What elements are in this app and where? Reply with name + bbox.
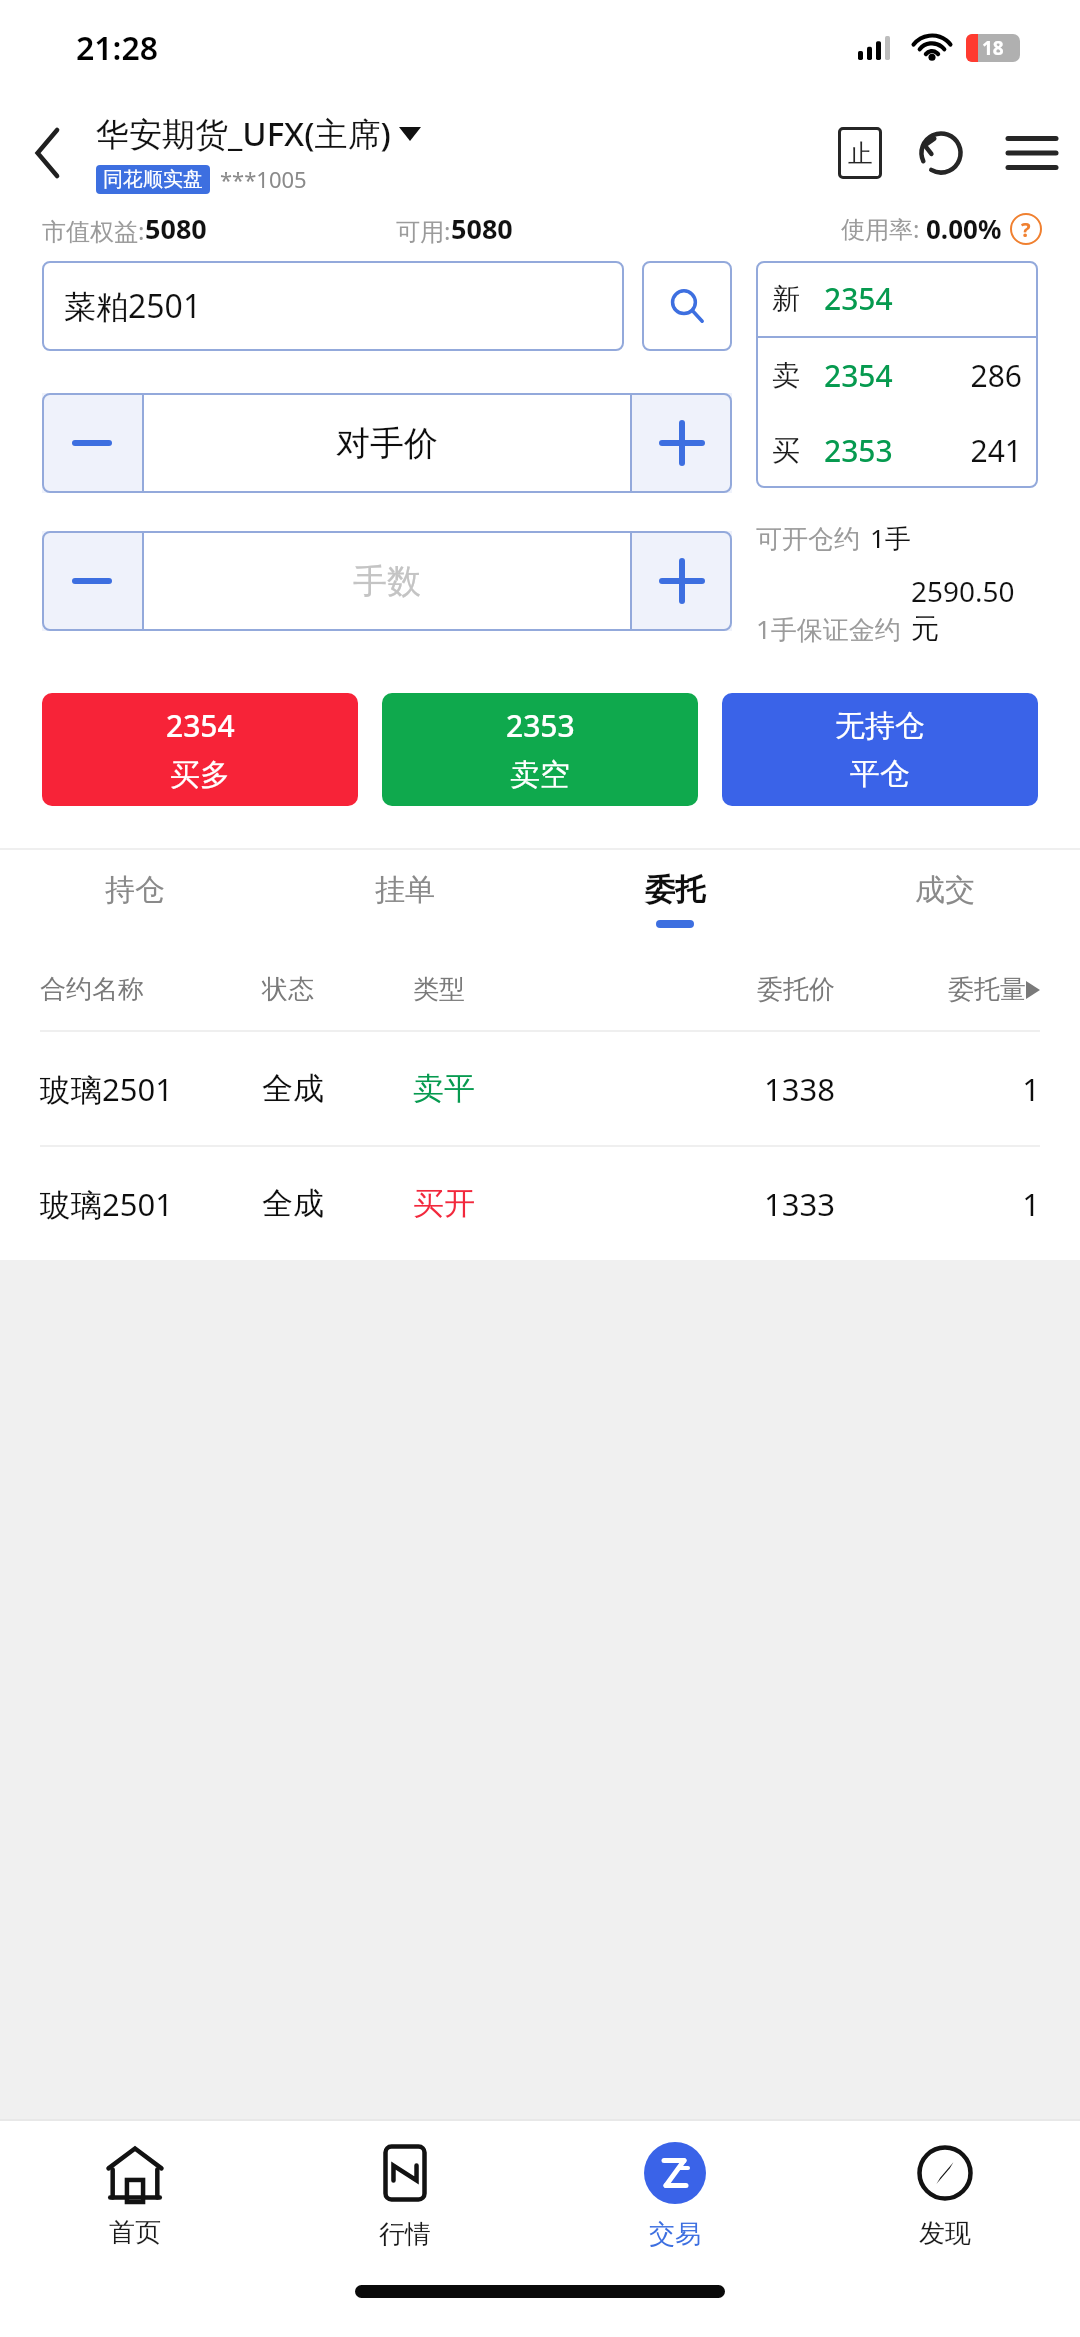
staticText: 1 xyxy=(865,1183,1040,1225)
button[interactable]: 卖 xyxy=(756,338,1038,413)
staticText: 买多 xyxy=(170,756,230,794)
button[interactable]: 减少 xyxy=(42,393,142,493)
staticText: 2354 xyxy=(166,705,235,746)
button[interactable]: 2354 xyxy=(42,693,358,806)
button[interactable]: 持仓 xyxy=(0,850,270,948)
button[interactable]: 增加 xyxy=(632,393,732,493)
button[interactable]: 成交 xyxy=(810,850,1080,948)
button[interactable]: 对手价 xyxy=(144,393,630,493)
staticText: 可开仓约 xyxy=(756,523,860,556)
staticText: 状态 xyxy=(262,973,413,1006)
staticText: 首页 xyxy=(109,2216,161,2249)
button[interactable]: Back xyxy=(0,95,96,210)
staticText: 手数 xyxy=(353,560,421,603)
staticText: 1333 xyxy=(628,1183,835,1225)
staticText: 对手价 xyxy=(336,422,438,465)
staticText: 286 xyxy=(970,355,1022,396)
staticText: 1手 xyxy=(870,520,911,556)
button[interactable]: 菜粕2501 xyxy=(42,261,624,351)
staticText: ? xyxy=(1021,216,1031,243)
button[interactable]: 搜索 xyxy=(642,261,732,351)
button[interactable]: 止损 xyxy=(822,115,898,191)
button[interactable]: 挂单 xyxy=(270,850,540,948)
staticText: 1 xyxy=(865,1068,1040,1110)
staticText: 18 xyxy=(982,35,1004,61)
staticText: 无持仓 xyxy=(835,707,925,745)
staticText: 2354 xyxy=(824,355,912,396)
staticText: 2353 xyxy=(506,705,575,746)
staticText: 菜粕2501 xyxy=(64,284,202,328)
button[interactable]: 菜单 xyxy=(984,105,1080,201)
button[interactable]: 首页 xyxy=(0,2121,270,2271)
staticText: 华安期货_UFX(主席) xyxy=(96,111,391,156)
staticText: 卖空 xyxy=(510,756,570,794)
button[interactable]: 说明 xyxy=(1010,213,1042,245)
button[interactable]: 玻璃2501 xyxy=(40,1032,1040,1145)
staticText: ***1005 xyxy=(220,164,307,194)
staticText: 交易 xyxy=(649,2218,701,2251)
staticText: 卖 xyxy=(772,358,824,393)
staticText: 持仓 xyxy=(105,871,165,909)
staticText: 5080 xyxy=(145,210,207,247)
staticText: 成交 xyxy=(915,871,975,909)
button[interactable]: 玻璃2501 xyxy=(40,1147,1040,1260)
staticText: 市值权益: xyxy=(42,214,145,247)
staticText: 买开 xyxy=(413,1184,628,1223)
staticText: 可用: xyxy=(396,214,451,247)
staticText: 2590.50元 xyxy=(911,572,1038,647)
staticText: 委托量 xyxy=(948,973,1026,1006)
button[interactable]: 2353 xyxy=(382,693,698,806)
staticText: 2354 xyxy=(824,278,912,319)
staticText: 0.00% xyxy=(926,211,1002,246)
staticText: 卖平 xyxy=(413,1069,628,1108)
staticText: 新 xyxy=(772,281,824,316)
button[interactable]: 发现 xyxy=(810,2121,1080,2271)
staticText: 5080 xyxy=(451,210,513,247)
staticText: 全成 xyxy=(262,1069,413,1108)
button[interactable]: 手数 xyxy=(144,531,630,631)
staticText: 同花顺实盘 xyxy=(103,167,203,192)
staticText: 委托 xyxy=(645,871,705,909)
button[interactable]: 增加 xyxy=(632,531,732,631)
staticText: 使用率: xyxy=(841,212,926,245)
staticText: 2353 xyxy=(824,430,912,471)
staticText: 买 xyxy=(772,433,824,468)
button[interactable]: 无持仓 xyxy=(722,693,1038,806)
staticText: 委托价 xyxy=(628,973,835,1006)
staticText: 玻璃2501 xyxy=(40,1068,262,1110)
button[interactable]: 华安期货_UFX(主席) xyxy=(96,111,421,156)
staticText: 挂单 xyxy=(375,871,435,909)
staticText: 玻璃2501 xyxy=(40,1183,262,1225)
button[interactable]: 交易 xyxy=(540,2121,810,2271)
staticText: 发现 xyxy=(919,2217,971,2250)
staticText: 类型 xyxy=(413,973,628,1006)
staticText: 全成 xyxy=(262,1184,413,1223)
staticText: 21:28 xyxy=(76,26,159,70)
button[interactable]: 行情 xyxy=(270,2121,540,2271)
button[interactable]: 新 xyxy=(756,261,1038,336)
staticText: 241 xyxy=(970,430,1022,471)
button[interactable]: 买 xyxy=(756,413,1038,488)
button[interactable]: 刷新 xyxy=(898,110,984,196)
staticText: 1338 xyxy=(628,1068,835,1110)
staticText: 1手保证金约 xyxy=(756,611,901,647)
button[interactable]: 委托 xyxy=(540,850,810,948)
staticText: 止 xyxy=(848,138,873,169)
staticText: 行情 xyxy=(379,2218,431,2251)
button[interactable]: 减少 xyxy=(42,531,142,631)
staticText: 合约名称 xyxy=(40,973,262,1006)
staticText: 平仓 xyxy=(850,755,910,793)
